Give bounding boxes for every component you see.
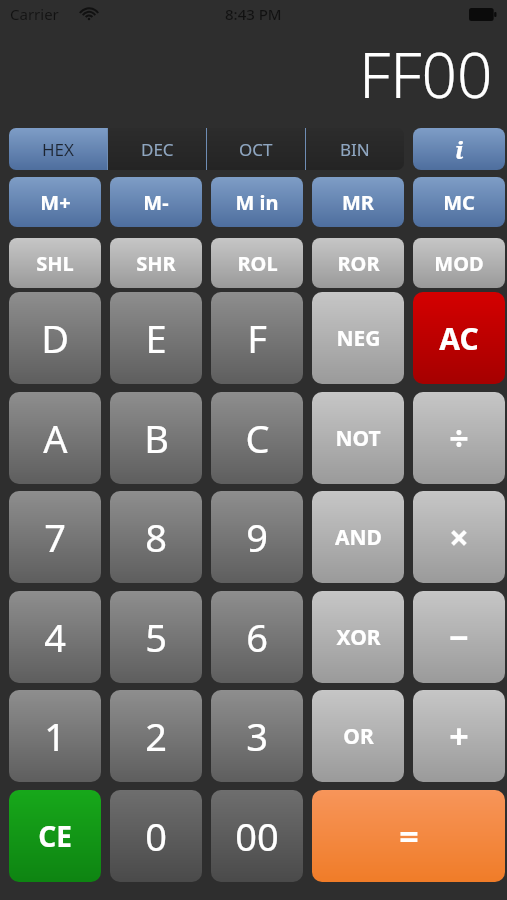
button[interactable]: AC	[413, 292, 505, 384]
button[interactable]: OR	[312, 690, 404, 782]
button[interactable]: AND	[312, 491, 404, 583]
staticText: M-	[143, 189, 169, 216]
staticText: MOD	[434, 250, 484, 277]
staticText: XOR	[336, 623, 381, 652]
staticText: B	[144, 412, 169, 464]
button[interactable]: =	[312, 790, 505, 882]
button[interactable]: ÷	[413, 392, 505, 484]
button[interactable]: MC	[413, 177, 505, 227]
button[interactable]: MOD	[413, 238, 505, 288]
staticText: ROL	[237, 250, 278, 277]
staticText: 1	[44, 710, 66, 762]
button[interactable]: D	[9, 292, 101, 384]
staticText: 4	[44, 611, 66, 663]
staticText: D	[41, 312, 69, 364]
staticText: =	[399, 813, 419, 859]
staticText: F	[247, 312, 267, 364]
button[interactable]: HEX	[9, 128, 107, 170]
staticText: 8	[145, 511, 167, 563]
button[interactable]: E	[110, 292, 202, 384]
staticText: A	[43, 412, 68, 464]
staticText: NOT	[335, 424, 381, 453]
staticText: CE	[38, 817, 72, 855]
button[interactable]: 7	[9, 491, 101, 583]
button[interactable]: SHR	[110, 238, 202, 288]
staticText: 7	[44, 511, 66, 563]
staticText: AND	[335, 523, 382, 552]
staticText: 3	[246, 710, 268, 762]
staticText: OR	[343, 722, 374, 751]
staticText: 9	[246, 511, 268, 563]
staticText: 5	[145, 611, 167, 663]
staticText: ÷	[449, 415, 469, 461]
staticText: AC	[439, 318, 479, 359]
staticText: M in	[235, 189, 279, 216]
staticText: 6	[246, 611, 268, 663]
staticText: i	[455, 133, 464, 166]
staticText: E	[145, 312, 167, 364]
staticText: M+	[40, 189, 71, 216]
staticText: 2	[145, 710, 167, 762]
button[interactable]: 6	[211, 591, 303, 683]
button[interactable]: XOR	[312, 591, 404, 683]
button[interactable]: A	[9, 392, 101, 484]
staticText: −	[449, 614, 469, 660]
button[interactable]: 8	[110, 491, 202, 583]
button[interactable]: 1	[9, 690, 101, 782]
staticText: OCT	[239, 138, 273, 161]
button[interactable]: M+	[9, 177, 101, 227]
button[interactable]: M-	[110, 177, 202, 227]
staticText: 0	[145, 810, 167, 862]
button[interactable]: +	[413, 690, 505, 782]
staticText: BIN	[340, 138, 370, 161]
button[interactable]: 3	[211, 690, 303, 782]
button[interactable]: 4	[9, 591, 101, 683]
button[interactable]: 5	[110, 591, 202, 683]
staticText: ROR	[337, 250, 380, 277]
button[interactable]: M in	[211, 177, 303, 227]
staticText: 8:43 PM	[225, 4, 282, 24]
button[interactable]: F	[211, 292, 303, 384]
staticText: 00	[235, 810, 279, 862]
staticText: DEC	[141, 138, 174, 161]
staticText: ×	[449, 514, 469, 560]
staticText: MC	[443, 189, 475, 216]
button[interactable]: 2	[110, 690, 202, 782]
button[interactable]: C	[211, 392, 303, 484]
staticText: Carrier	[10, 4, 59, 24]
button[interactable]: OCT	[207, 128, 305, 170]
button[interactable]: Info	[413, 128, 505, 170]
button[interactable]: MR	[312, 177, 404, 227]
button[interactable]: ROL	[211, 238, 303, 288]
button[interactable]: 9	[211, 491, 303, 583]
staticText: FF00	[359, 32, 493, 116]
staticText: NEG	[336, 324, 381, 353]
staticText: +	[449, 713, 469, 759]
staticText: SHL	[36, 250, 74, 277]
staticText: SHR	[136, 250, 176, 277]
button[interactable]: 00	[211, 790, 303, 882]
button[interactable]: −	[413, 591, 505, 683]
button[interactable]: CE	[9, 790, 101, 882]
button[interactable]: B	[110, 392, 202, 484]
staticText: HEX	[42, 138, 75, 161]
staticText: C	[245, 412, 270, 464]
button[interactable]: 0	[110, 790, 202, 882]
button[interactable]: DEC	[108, 128, 206, 170]
button[interactable]: ×	[413, 491, 505, 583]
button[interactable]: NEG	[312, 292, 404, 384]
staticText: MR	[342, 189, 374, 216]
button[interactable]: BIN	[306, 128, 404, 170]
button[interactable]: NOT	[312, 392, 404, 484]
button[interactable]: SHL	[9, 238, 101, 288]
button[interactable]: ROR	[312, 238, 404, 288]
